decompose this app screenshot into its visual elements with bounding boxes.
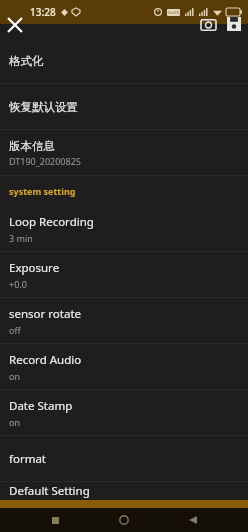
button[interactable]: Home (110, 508, 138, 532)
staticText: Exposure (9, 260, 60, 276)
button[interactable]: Save (224, 12, 244, 36)
staticText: system setting (9, 185, 76, 197)
staticText: on (9, 370, 21, 382)
staticText: Default Setting (9, 483, 90, 499)
button[interactable]: Record Audio (0, 344, 248, 389)
staticText: +0.0 (9, 278, 27, 290)
button[interactable]: 版本信息 (0, 130, 248, 175)
button[interactable]: Loop Recording (0, 206, 248, 251)
button[interactable]: format (0, 436, 248, 481)
staticText: Record Audio (9, 352, 82, 368)
staticText: 格式化 (9, 54, 44, 68)
button[interactable]: Close (2, 12, 28, 38)
button[interactable]: Camera (196, 12, 220, 36)
staticText: 13:28 (30, 5, 56, 19)
button[interactable]: Exposure (0, 252, 248, 297)
staticText: 版本信息 (9, 139, 55, 153)
staticText: VoLTE (168, 10, 180, 15)
staticText: Loop Recording (9, 214, 94, 230)
staticText: DT190_20200825 (9, 155, 81, 167)
button[interactable]: Default Setting (0, 482, 248, 500)
button[interactable]: Recents (41, 508, 69, 532)
button[interactable]: sensor rotate (0, 298, 248, 343)
button[interactable]: Back (179, 508, 207, 532)
staticText: off (9, 324, 21, 336)
staticText: Date Stamp (9, 398, 73, 414)
button[interactable]: 格式化 (0, 38, 248, 83)
staticText: 3 min (9, 232, 33, 244)
staticText: sensor rotate (9, 306, 82, 322)
button[interactable]: Date Stamp (0, 390, 248, 435)
staticText: 恢复默认设置 (9, 100, 78, 114)
staticText: format (9, 451, 47, 467)
staticText: on (9, 416, 21, 428)
button[interactable]: 恢复默认设置 (0, 84, 248, 129)
